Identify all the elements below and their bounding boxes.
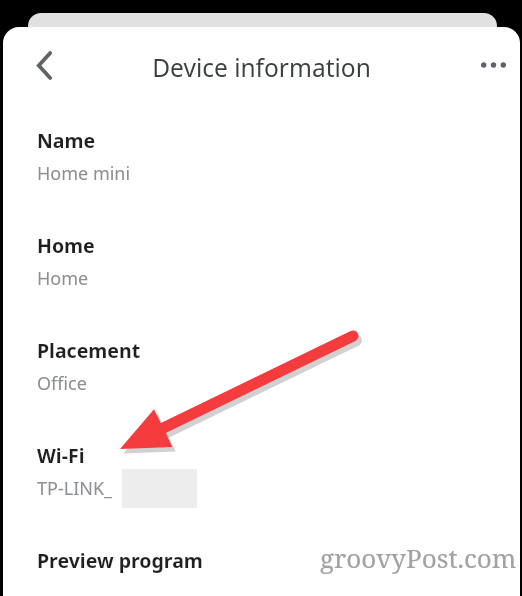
staticText: Wi-Fi <box>37 442 85 469</box>
button[interactable]: Placement <box>3 325 520 417</box>
staticText: Device information <box>3 51 520 84</box>
staticText: Preview program <box>37 547 203 574</box>
button[interactable]: More options <box>471 43 515 87</box>
button[interactable]: Back <box>22 43 66 87</box>
staticText: Name <box>37 127 96 154</box>
button[interactable]: Wi-Fi <box>3 430 520 522</box>
staticText: Placement <box>37 337 141 364</box>
button[interactable]: Home <box>3 220 520 312</box>
staticText: Office <box>37 371 87 396</box>
staticText: TP-LINK_ <box>37 476 113 501</box>
staticText: Home mini <box>37 161 131 186</box>
button[interactable]: Preview program <box>3 535 520 593</box>
button[interactable]: Name <box>3 115 520 207</box>
staticText: Home <box>37 266 89 291</box>
staticText: groovyPost.com <box>320 540 517 575</box>
staticText: Home <box>37 232 95 259</box>
